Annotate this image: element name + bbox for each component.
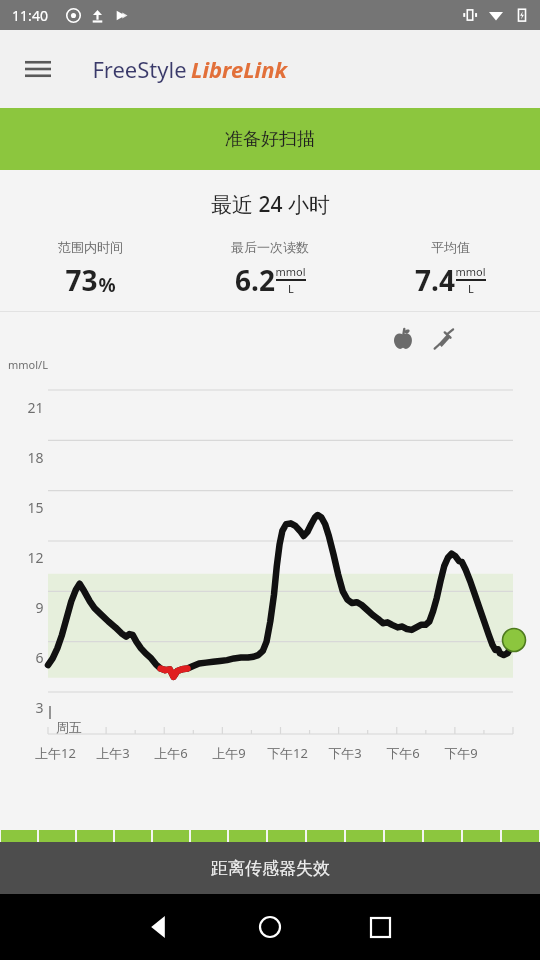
staticText: 上午3	[96, 744, 130, 762]
staticText: FreeStyle	[92, 54, 187, 84]
staticText: 73	[65, 261, 98, 299]
staticText: 周五	[56, 719, 82, 735]
staticText: 最近 24 小时	[211, 190, 330, 219]
staticText: mmol/L	[8, 357, 48, 372]
staticText: 范围内时间	[58, 239, 123, 255]
staticText: 准备好扫描	[225, 128, 315, 151]
staticText: L	[288, 281, 294, 296]
staticText: 18	[27, 448, 44, 467]
staticText: 3	[35, 698, 44, 717]
button[interactable]: Menu	[16, 47, 60, 91]
staticText: 11:40	[12, 6, 48, 25]
button[interactable]: Recents	[357, 904, 403, 950]
button[interactable]: Home	[247, 904, 293, 950]
button[interactable]: Food log	[388, 324, 418, 354]
staticText: 上午6	[154, 744, 188, 762]
button[interactable]: 最后一次读数	[180, 237, 360, 301]
staticText: 上午12	[35, 744, 76, 762]
staticText: 12	[27, 548, 44, 567]
button[interactable]: Back	[137, 904, 183, 950]
staticText: 6.2	[235, 261, 275, 299]
staticText: LibreLink	[191, 54, 287, 84]
button[interactable]: 范围内时间	[0, 237, 180, 301]
staticText: 下午3	[328, 744, 362, 762]
staticText: 21	[27, 398, 44, 417]
staticText: 距离传感器失效	[211, 858, 330, 879]
staticText: mmol	[275, 264, 306, 279]
button[interactable]: Insulin log	[428, 324, 458, 354]
staticText: L	[468, 281, 474, 296]
staticText: 最后一次读数	[231, 239, 309, 255]
staticText: 6	[35, 648, 44, 667]
button[interactable]: 平均值	[360, 237, 540, 301]
staticText: 平均值	[431, 239, 470, 255]
staticText: 下午12	[267, 744, 308, 762]
staticText: 7.4	[415, 261, 455, 299]
staticText: 上午9	[212, 744, 246, 762]
staticText: 下午9	[444, 744, 478, 762]
staticText: 下午6	[386, 744, 420, 762]
staticText: 15	[27, 498, 44, 517]
staticText: mmol	[455, 264, 486, 279]
staticText: 9	[35, 598, 44, 617]
staticText: %	[98, 272, 116, 298]
button[interactable]: 准备好扫描	[0, 108, 540, 170]
